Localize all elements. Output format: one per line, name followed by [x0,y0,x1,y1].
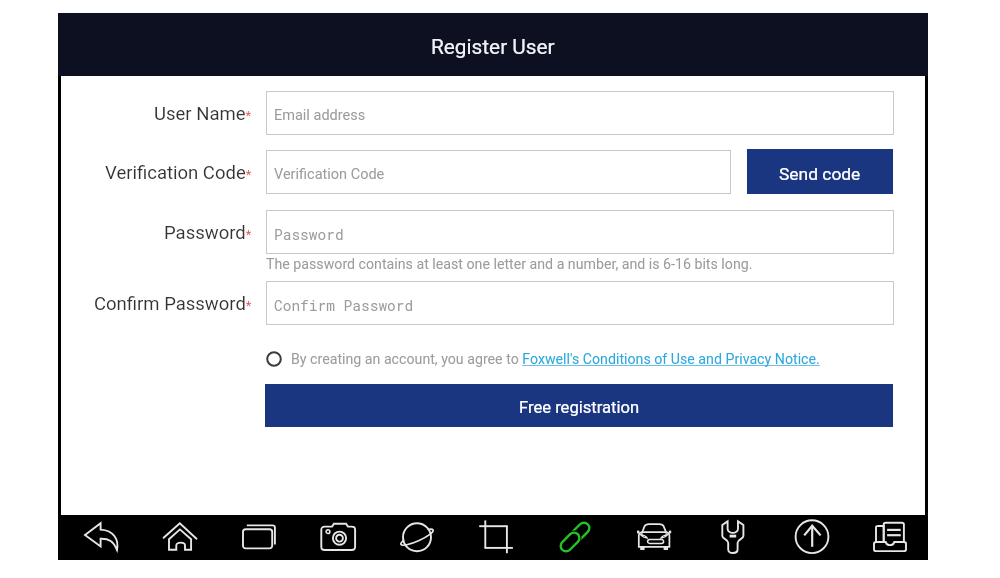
button[interactable]: Recent apps [219,515,298,560]
staticText: By creating an account, you agree to Fox… [291,351,820,368]
button[interactable]: Screenshot camera [298,515,377,560]
staticText: Verification Code* [105,162,252,184]
staticText: Register User [431,35,555,59]
button[interactable]: Vehicle [614,515,693,560]
button[interactable]: Password [266,210,894,254]
staticText: User Name* [154,103,252,125]
button[interactable]: By creating an account, you agree to Fox… [265,347,820,371]
staticText: Send code [779,164,861,184]
button[interactable]: Free registration [265,384,893,427]
button[interactable]: Manual [851,515,928,560]
staticText: Password* [164,222,252,244]
button[interactable]: Send code [747,149,893,194]
button[interactable]: Tools [693,515,772,560]
button[interactable]: Verification Code [266,150,731,194]
button[interactable]: Connection [535,515,614,560]
button[interactable]: Crop [456,515,535,560]
staticText: Email address [274,107,366,124]
button[interactable]: Back [61,515,140,560]
staticText: Confirm Password* [94,293,252,315]
button[interactable]: Home [140,515,219,560]
staticText: The password contains at least one lette… [266,256,753,273]
button[interactable]: Update [772,515,851,560]
staticText: Confirm Password [274,296,414,315]
button[interactable]: Email address [266,91,894,135]
button[interactable]: Confirm Password [266,281,894,325]
staticText: Verification Code [274,166,385,183]
staticText: Password [274,225,344,244]
staticText: Free registration [519,398,640,417]
button[interactable]: Browser [377,515,456,560]
